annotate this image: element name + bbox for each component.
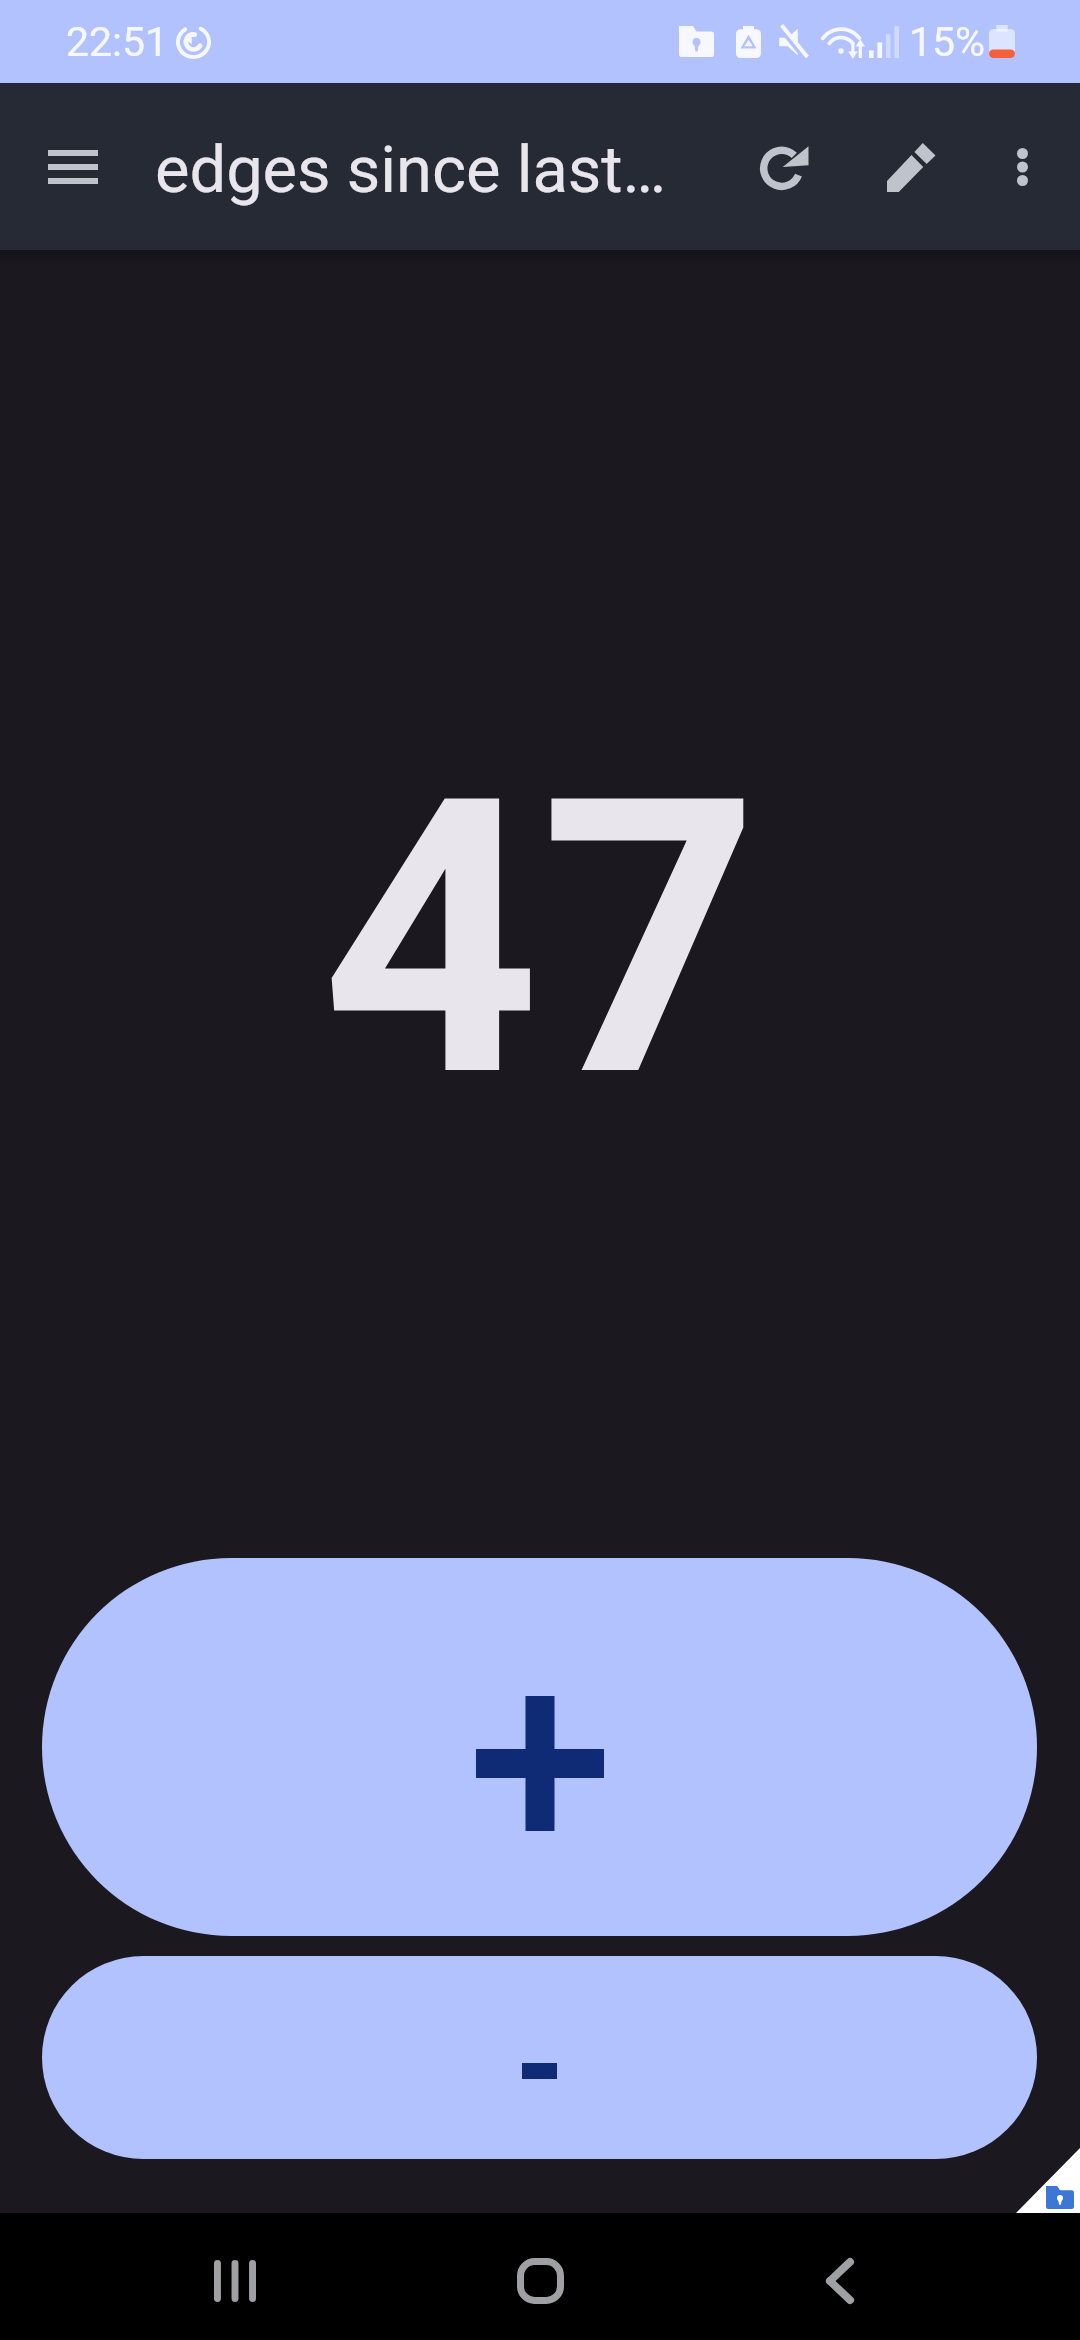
button[interactable]: More options [965,83,1080,250]
button[interactable]: Home [460,2213,620,2340]
button[interactable]: Recent apps [155,2213,315,2340]
button[interactable]: Decrement counter [42,1956,1037,2159]
staticText: 47 [321,716,760,1164]
button[interactable]: Increment counter [42,1558,1037,1936]
button[interactable]: Open navigation drawer [0,83,146,250]
button[interactable]: Back [760,2213,920,2340]
button[interactable]: Reset counter [712,83,858,250]
button[interactable]: Edit counter [858,83,965,250]
staticText: edges since last… [155,132,712,208]
staticText: 22:51 [66,18,169,66]
staticText: 15% [909,18,986,66]
